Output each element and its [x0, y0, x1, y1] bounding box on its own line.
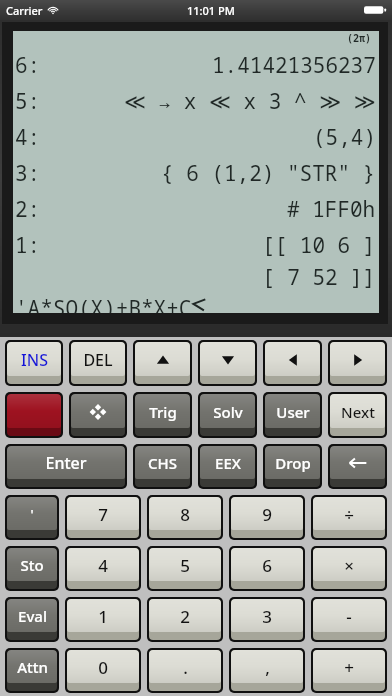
staticText: Enter — [45, 452, 87, 474]
button[interactable]: Sto — [7, 548, 57, 589]
button[interactable]: . — [149, 650, 221, 691]
staticText: 6 — [262, 554, 272, 577]
staticText: 7 — [98, 503, 108, 526]
staticText: Eval — [18, 606, 47, 626]
button[interactable]: DEL — [71, 342, 125, 384]
button[interactable]: Left — [265, 342, 320, 384]
button[interactable]: 4 — [67, 548, 139, 589]
button[interactable]: - — [313, 599, 385, 640]
staticText: Attn — [17, 657, 48, 677]
button[interactable]: Solv — [200, 394, 255, 436]
button[interactable]: Drop — [265, 446, 320, 487]
staticText: 2 — [180, 605, 190, 628]
button[interactable]: INS — [7, 342, 61, 384]
staticText: . — [183, 656, 188, 679]
button[interactable]: 5 — [149, 548, 221, 589]
staticText: DEL — [83, 349, 113, 371]
staticText: - — [346, 605, 352, 628]
staticText: 2: — [15, 195, 41, 224]
staticText: 11:01 PM — [187, 3, 235, 18]
staticText: INS — [21, 349, 48, 371]
staticText: 3: — [15, 159, 41, 188]
button[interactable]: Backspace — [330, 446, 385, 487]
button[interactable]: ' — [7, 497, 57, 538]
staticText: 3 — [262, 605, 272, 628]
staticText: 1 — [98, 605, 108, 628]
button[interactable]: ÷ — [313, 497, 385, 538]
button[interactable]: Next — [330, 394, 385, 436]
button[interactable]: 2 — [149, 599, 221, 640]
staticText: , — [265, 656, 270, 679]
staticText: (5,4) — [313, 123, 376, 152]
staticText: 5 — [180, 554, 190, 577]
button[interactable]: + — [313, 650, 385, 691]
staticText: + — [344, 656, 354, 679]
staticText: ÷ — [344, 503, 354, 526]
staticText: ' — [30, 505, 34, 523]
button[interactable]: Up — [135, 342, 190, 384]
button[interactable]: 6 — [231, 548, 303, 589]
button[interactable]: 0 — [67, 650, 139, 691]
staticText: × — [344, 554, 354, 577]
staticText: [[ 10 6 ] — [262, 231, 376, 260]
button[interactable]: Enter — [7, 446, 125, 487]
staticText: # 1FF0h — [287, 195, 376, 224]
button[interactable]: 8 — [149, 497, 221, 538]
button[interactable]: 1 — [67, 599, 139, 640]
staticText: ≪ → x ≪ x 3 ^ ≫ ≫ — [124, 87, 376, 116]
staticText: EEX — [215, 453, 241, 473]
staticText: CHS — [148, 453, 177, 473]
staticText: 1: — [15, 231, 41, 260]
button[interactable]: Shift — [7, 394, 61, 436]
staticText: 5: — [15, 87, 41, 116]
staticText: 1.41421356237 — [212, 51, 376, 80]
staticText: { 6 (1,2) "STR" } — [161, 159, 376, 188]
button[interactable]: Menu — [71, 394, 125, 436]
staticText: (2π) — [347, 31, 371, 45]
staticText: 6: — [15, 51, 41, 80]
button[interactable]: 3 — [231, 599, 303, 640]
staticText: 4 — [98, 554, 108, 577]
staticText: Solv — [213, 402, 243, 422]
staticText: Trig — [149, 402, 177, 422]
button[interactable]: , — [231, 650, 303, 691]
staticText: 4: — [15, 123, 41, 152]
button[interactable]: Trig — [135, 394, 190, 436]
staticText: Next — [341, 402, 375, 422]
staticText: Sto — [20, 555, 44, 575]
staticText: 'A*SQ(X)+B*X+C — [15, 294, 192, 313]
button[interactable]: CHS — [135, 446, 190, 487]
staticText: 9 — [262, 503, 272, 526]
staticText: Drop — [275, 453, 311, 473]
button[interactable]: Down — [200, 342, 255, 384]
button[interactable]: Right — [330, 342, 385, 384]
button[interactable]: User — [265, 394, 320, 436]
button[interactable]: 7 — [67, 497, 139, 538]
staticText: Carrier — [6, 3, 43, 18]
staticText: 0 — [98, 656, 108, 679]
button[interactable]: Eval — [7, 599, 57, 640]
button[interactable]: 9 — [231, 497, 303, 538]
button[interactable]: × — [313, 548, 385, 589]
button[interactable]: EEX — [200, 446, 255, 487]
staticText: [ 7 52 ]] — [262, 263, 376, 292]
staticText: 8 — [180, 503, 190, 526]
staticText: User — [276, 402, 310, 422]
button[interactable]: Attn — [7, 650, 57, 691]
